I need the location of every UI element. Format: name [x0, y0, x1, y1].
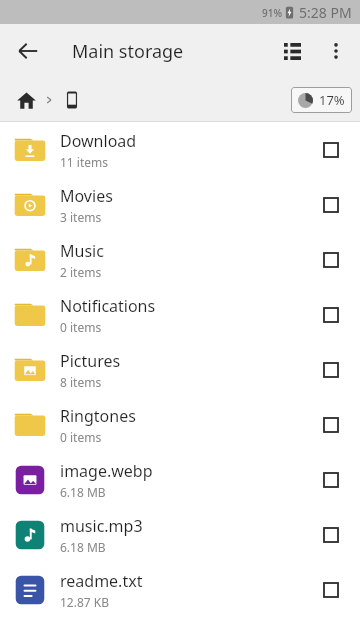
button[interactable]: 17%: [291, 87, 352, 113]
staticText: Main storage: [72, 39, 184, 64]
staticText: image.webp: [60, 460, 153, 482]
staticText: 2 items: [60, 264, 102, 280]
button[interactable]: Ringtones: [0, 397, 360, 452]
button[interactable]: Movies: [0, 177, 360, 232]
button[interactable]: Notifications: [0, 287, 360, 342]
button[interactable]: Download: [0, 122, 360, 177]
staticText: music.mp3: [60, 515, 143, 537]
button[interactable]: readme.txt: [0, 562, 360, 617]
staticText: Music: [60, 240, 104, 262]
button[interactable]: Select Ringtones: [314, 408, 348, 442]
button[interactable]: Select music.mp3: [314, 518, 348, 552]
button[interactable]: Select Pictures: [314, 353, 348, 387]
button[interactable]: Select Movies: [314, 188, 348, 222]
staticText: Download: [60, 130, 137, 152]
staticText: 3 items: [60, 209, 102, 225]
staticText: 6.18 MB: [60, 539, 106, 555]
staticText: 5:28 PM: [299, 3, 352, 22]
staticText: 17%: [319, 91, 345, 109]
button[interactable]: Select image.webp: [314, 463, 348, 497]
staticText: Movies: [60, 185, 113, 207]
button[interactable]: More options: [314, 29, 358, 73]
staticText: Notifications: [60, 295, 156, 317]
staticText: 6.18 MB: [60, 484, 106, 500]
button[interactable]: Select Notifications: [314, 298, 348, 332]
button[interactable]: View mode: [270, 29, 314, 73]
staticText: 8 items: [60, 374, 102, 390]
button[interactable]: image.webp: [0, 452, 360, 507]
staticText: Ringtones: [60, 405, 136, 427]
staticText: 91%: [262, 6, 282, 20]
button[interactable]: Select Download: [314, 133, 348, 167]
button[interactable]: Back: [6, 29, 50, 73]
button[interactable]: Select readme.txt: [314, 573, 348, 607]
staticText: 11 items: [60, 154, 109, 170]
button[interactable]: Pictures: [0, 342, 360, 397]
button[interactable]: music.mp3: [0, 507, 360, 562]
staticText: 12.87 KB: [60, 594, 110, 610]
staticText: 0 items: [60, 319, 102, 335]
button[interactable]: Home: [13, 87, 39, 113]
button[interactable]: Main storage: [59, 87, 85, 113]
button[interactable]: Select Music: [314, 243, 348, 277]
staticText: readme.txt: [60, 570, 143, 592]
staticText: 0 items: [60, 429, 102, 445]
button[interactable]: Music: [0, 232, 360, 287]
staticText: Pictures: [60, 350, 121, 372]
